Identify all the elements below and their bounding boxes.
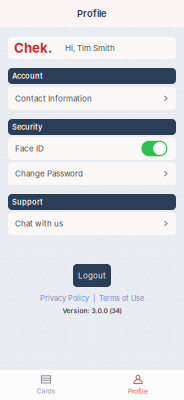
staticText: Privacy Policy bbox=[40, 294, 89, 303]
staticText: Version: 3.0.0 (34) bbox=[62, 307, 121, 315]
button[interactable]: Chat with us bbox=[8, 212, 176, 235]
staticText: Account bbox=[12, 71, 43, 80]
staticText: Change Password bbox=[15, 169, 83, 178]
staticText: Terms of Use bbox=[99, 294, 144, 303]
staticText: Chat with us bbox=[15, 219, 63, 228]
button[interactable]: Privacy Policy bbox=[40, 294, 89, 303]
button[interactable]: Face ID toggle, on bbox=[141, 141, 167, 156]
staticText: Cards bbox=[36, 387, 55, 395]
button[interactable]: Profile bbox=[92, 370, 184, 400]
button[interactable]: Change Password bbox=[8, 162, 176, 185]
staticText: Logout bbox=[78, 271, 106, 280]
button[interactable]: Logout bbox=[73, 264, 111, 287]
staticText: Profile bbox=[128, 387, 148, 395]
button[interactable]: Terms of Use bbox=[99, 294, 144, 303]
staticText: Hi, Tim Smith bbox=[65, 43, 115, 53]
staticText: Contact Information bbox=[15, 94, 92, 103]
staticText: Face ID bbox=[15, 144, 44, 153]
staticText: Security bbox=[12, 122, 42, 131]
staticText: Chek. bbox=[14, 40, 52, 56]
staticText: Support bbox=[12, 197, 43, 206]
staticText: | bbox=[93, 294, 95, 303]
staticText: Profile bbox=[77, 8, 107, 19]
button[interactable]: Cards bbox=[0, 370, 92, 400]
button[interactable]: Contact Information bbox=[8, 87, 176, 110]
